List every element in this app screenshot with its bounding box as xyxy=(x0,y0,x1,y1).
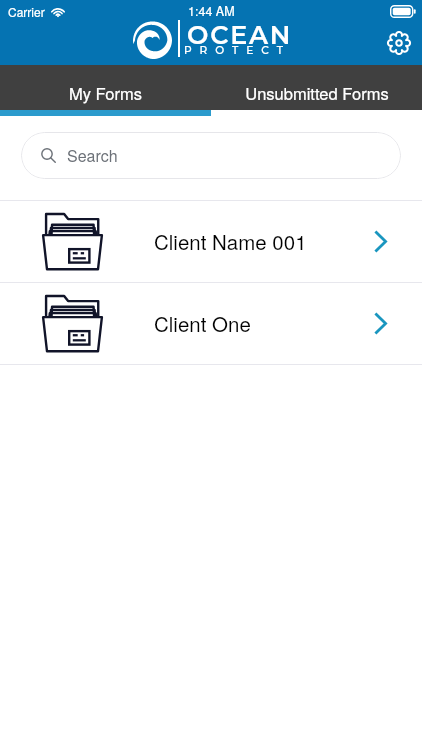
button[interactable]: Settings xyxy=(382,26,416,60)
staticText: Carrier xyxy=(8,3,45,20)
staticText: My Forms xyxy=(69,81,142,105)
button[interactable]: Search xyxy=(21,132,401,179)
staticText: 1:44 AM xyxy=(188,2,235,20)
staticText: OCEAN xyxy=(187,19,293,50)
button[interactable]: Client Name 001 xyxy=(0,201,422,282)
staticText: Client One xyxy=(154,308,251,337)
button[interactable]: Client One xyxy=(0,283,422,364)
staticText: Client Name 001 xyxy=(154,226,307,255)
staticText: Search xyxy=(67,144,118,167)
staticText: Unsubmitted Forms xyxy=(245,81,389,105)
button[interactable]: My Forms xyxy=(0,65,211,110)
staticText: PROTECT xyxy=(184,44,291,57)
button[interactable]: Unsubmitted Forms xyxy=(211,65,422,110)
